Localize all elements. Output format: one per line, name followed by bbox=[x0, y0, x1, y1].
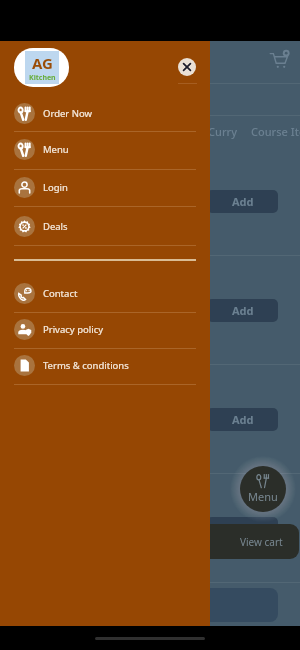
button[interactable]: Add bbox=[207, 190, 278, 213]
staticText: Kitchen bbox=[29, 73, 56, 83]
button[interactable]: Deals bbox=[0, 211, 210, 241]
button[interactable]: Login bbox=[0, 172, 210, 202]
staticText: Biryani bbox=[157, 124, 194, 139]
staticText: Starters bbox=[101, 124, 143, 139]
staticText: View cart bbox=[240, 535, 283, 549]
staticText: Add bbox=[232, 303, 254, 318]
staticText: Terms & conditions bbox=[43, 359, 129, 372]
button[interactable]: Cart bbox=[269, 50, 289, 70]
button[interactable]: Add bbox=[0, 365, 300, 474]
button[interactable] bbox=[12, 588, 278, 622]
staticText: Add bbox=[232, 521, 254, 536]
button[interactable]: Order Now bbox=[0, 98, 210, 128]
button[interactable]: Add bbox=[207, 408, 278, 431]
staticText: AG bbox=[32, 53, 53, 73]
button[interactable]: View cart bbox=[0, 524, 299, 559]
button[interactable]: Biryani bbox=[150, 118, 201, 145]
staticText: Privacy policy bbox=[43, 323, 104, 336]
button[interactable]: Menu bbox=[240, 466, 286, 512]
button[interactable]: Add bbox=[0, 147, 300, 256]
button[interactable]: Add bbox=[0, 474, 300, 583]
staticText: Add bbox=[232, 412, 254, 427]
button[interactable]: Curry bbox=[201, 118, 244, 145]
button[interactable]: Course Items bbox=[244, 118, 300, 145]
staticText: Order Now bbox=[43, 107, 92, 120]
button[interactable]: Starters bbox=[94, 118, 150, 145]
button[interactable]: Add bbox=[207, 517, 278, 540]
staticText: Add bbox=[232, 194, 254, 209]
button[interactable]: Add bbox=[0, 583, 300, 650]
staticText: Course Items bbox=[251, 124, 300, 139]
button[interactable]: Menu bbox=[0, 134, 210, 164]
staticText: Menu bbox=[43, 143, 69, 156]
staticText: Menu bbox=[248, 489, 278, 504]
button[interactable]: Privacy policy bbox=[0, 314, 210, 344]
staticText: Deals bbox=[43, 220, 68, 233]
button[interactable]: Add bbox=[207, 299, 278, 322]
button[interactable]: Close bbox=[178, 58, 196, 76]
button[interactable]: Contact bbox=[0, 278, 210, 308]
staticText: Curry bbox=[208, 124, 237, 139]
staticText: Login bbox=[43, 181, 68, 194]
button[interactable]: Add bbox=[0, 256, 300, 365]
button[interactable]: Terms & conditions bbox=[0, 350, 210, 380]
staticText: Contact bbox=[43, 287, 78, 300]
